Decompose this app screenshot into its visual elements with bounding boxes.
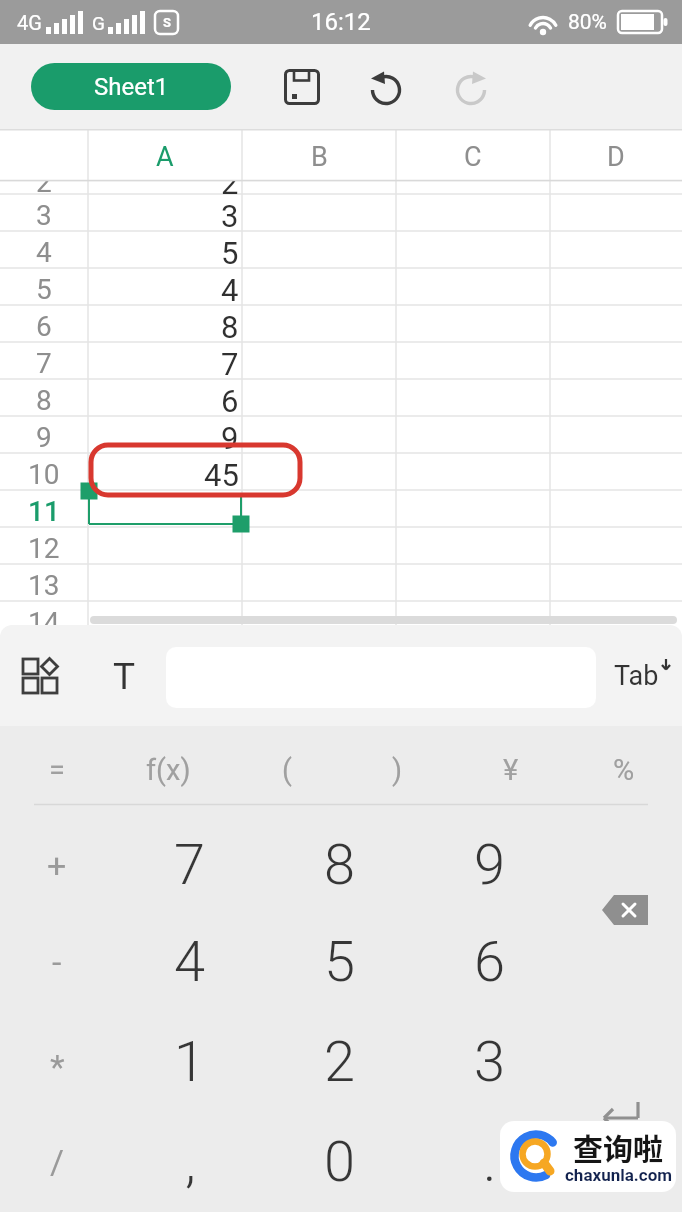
staticText: 10 [28, 458, 60, 491]
staticText: 8 [36, 384, 52, 417]
staticText: 5 [324, 929, 356, 995]
button[interactable]: T [102, 653, 146, 699]
staticText: 2 [36, 166, 52, 199]
button[interactable]: Tab [602, 651, 678, 701]
staticText: 7 [36, 347, 52, 380]
button[interactable]: - [12, 922, 102, 1002]
staticText: 5 [36, 273, 52, 306]
staticText: 1 [174, 1029, 206, 1095]
button[interactable] [20, 655, 62, 697]
staticText: 4 [221, 272, 239, 308]
staticText: 6 [474, 929, 506, 995]
staticText: 9 [474, 832, 506, 898]
button[interactable]: . [415, 1114, 565, 1210]
staticText: 80% [568, 10, 607, 35]
staticText: 3 [36, 199, 52, 232]
staticText: 5 [221, 235, 239, 271]
staticText: Tab [614, 660, 659, 692]
staticText: % [613, 753, 635, 787]
button[interactable]: = [12, 735, 102, 805]
staticText: 6 [36, 310, 52, 343]
button[interactable]: Sheet1 [31, 63, 231, 110]
button[interactable]: 3 [415, 1014, 565, 1110]
staticText: 7 [174, 832, 206, 898]
staticText: 查询啦 [573, 1125, 663, 1163]
staticText: 6 [221, 383, 239, 419]
staticText: - [52, 942, 62, 982]
staticText: Sheet1 [94, 73, 169, 101]
button[interactable]: 5 [265, 914, 415, 1010]
staticText: + [47, 845, 67, 885]
staticText: chaxunla.com [565, 1165, 672, 1185]
staticText: 3 [474, 1029, 506, 1095]
staticText: 14 [28, 606, 60, 625]
button[interactable]: 0 [265, 1114, 415, 1210]
staticText: 8 [324, 832, 356, 898]
staticText: 4G [17, 11, 42, 34]
button[interactable]: * [12, 1027, 102, 1107]
staticText: A [156, 141, 174, 173]
button[interactable]: 2 [265, 1014, 415, 1110]
staticText: D [607, 141, 625, 173]
button[interactable] [284, 69, 320, 105]
staticText: 3 [221, 198, 239, 234]
staticText: 2 [324, 1029, 356, 1095]
button[interactable]: 1 [115, 1014, 265, 1110]
button[interactable]: + [12, 825, 102, 905]
button[interactable]: 7 [115, 817, 265, 913]
staticText: 7 [221, 346, 239, 382]
staticText: = [49, 753, 65, 787]
staticText: C [464, 141, 482, 173]
staticText: 9 [221, 420, 239, 456]
staticText: , [185, 1129, 196, 1195]
button[interactable]: / [12, 1122, 102, 1202]
button[interactable]: , [115, 1114, 265, 1210]
button[interactable]: 4 [115, 914, 265, 1010]
staticText: f(x) [146, 753, 191, 787]
staticText: ) [392, 753, 403, 787]
staticText: ¥ [503, 753, 519, 787]
button[interactable]: 8 [265, 817, 415, 913]
button[interactable] [453, 69, 491, 107]
staticText: 13 [28, 569, 60, 602]
button[interactable]: ¥ [466, 735, 556, 805]
button[interactable]: 9 [415, 817, 565, 913]
button[interactable]: ( [242, 735, 332, 805]
staticText: 12 [28, 532, 60, 565]
staticText: T [113, 655, 136, 698]
staticText: . [483, 1129, 497, 1195]
staticText: 4 [36, 236, 52, 269]
staticText: * [50, 1047, 65, 1087]
staticText: ( [282, 753, 292, 787]
button[interactable] [366, 69, 404, 107]
staticText: B [311, 141, 328, 173]
button[interactable]: ) [352, 735, 442, 805]
button[interactable]: f(x) [123, 735, 213, 805]
staticText: G [92, 12, 105, 34]
button[interactable]: % [579, 735, 669, 805]
staticText: 16:12 [311, 8, 371, 36]
staticText: / [50, 1142, 65, 1182]
button[interactable] [596, 890, 654, 930]
staticText: 0 [324, 1129, 356, 1195]
staticText: 9 [36, 421, 52, 454]
button[interactable]: 6 [415, 914, 565, 1010]
staticText: S [163, 15, 171, 30]
button[interactable] [594, 1096, 648, 1136]
staticText: 45 [204, 457, 239, 493]
staticText: 2 [221, 165, 239, 201]
staticText: 8 [221, 309, 239, 345]
staticText: 4 [174, 929, 206, 995]
staticText: 11 [28, 495, 60, 528]
